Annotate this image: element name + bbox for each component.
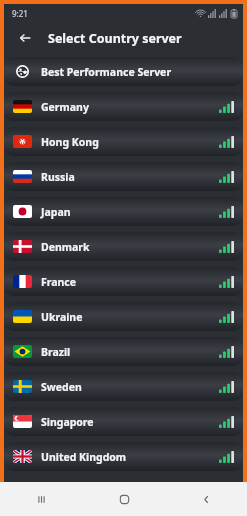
staticText: Germany [41,100,89,114]
button[interactable]: Singapore [4,407,243,436]
staticText: Best Performance Server [41,65,172,79]
button[interactable]: Germany [4,92,243,121]
button[interactable]: France [4,267,243,296]
button[interactable]: Denmark [4,232,243,261]
staticText: Ukraine [41,310,83,324]
button[interactable]: Ukraine [4,302,243,331]
button[interactable]: Back [14,27,36,49]
button[interactable]: United Kingdom [4,442,243,471]
staticText: Russia [41,170,75,184]
staticText: Singapore [41,415,94,429]
button[interactable]: Brazil [4,337,243,366]
button[interactable]: Sweden [4,372,243,401]
button[interactable]: Back [165,482,247,516]
button[interactable]: Best Performance Server [4,57,243,86]
staticText: France [41,275,77,289]
staticText: Denmark [41,240,90,254]
staticText: Japan [41,205,71,219]
staticText: Hong Kong [41,135,99,149]
button[interactable]: Japan [4,197,243,226]
staticText: 9:21 [12,8,28,19]
staticText: Select Country server [48,30,182,47]
button[interactable]: Recents [0,482,83,516]
staticText: United Kingdom [41,450,127,464]
button[interactable]: Russia [4,162,243,191]
button[interactable]: Home [83,482,165,516]
staticText: Brazil [41,345,71,359]
button[interactable]: Hong Kong [4,127,243,156]
staticText: Sweden [41,380,82,394]
